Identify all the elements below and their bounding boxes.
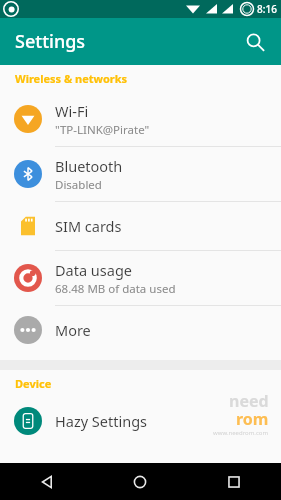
button[interactable]: Recents bbox=[187, 463, 281, 500]
staticText: www.needrom.com bbox=[213, 429, 269, 437]
staticText: 8:16 bbox=[257, 2, 277, 16]
button[interactable]: Search bbox=[237, 24, 273, 60]
staticText: rom bbox=[236, 408, 269, 430]
button[interactable]: Data usage bbox=[0, 251, 281, 305]
button[interactable]: More bbox=[0, 306, 281, 354]
staticText: Settings bbox=[15, 29, 86, 54]
button[interactable]: SIM cards bbox=[0, 202, 281, 250]
staticText: Wi-Fi bbox=[55, 101, 89, 121]
staticText: Data usage bbox=[55, 260, 132, 280]
button[interactable]: Hazy Settings bbox=[0, 397, 281, 445]
staticText: Device bbox=[15, 376, 52, 391]
staticText: Hazy Settings bbox=[55, 411, 148, 431]
staticText: Bluetooth bbox=[55, 156, 123, 176]
staticText: More bbox=[55, 320, 91, 340]
staticText: "TP-LINK@Pirate" bbox=[55, 122, 150, 138]
button[interactable]: Bluetooth bbox=[0, 147, 281, 201]
staticText: Wireless & networks bbox=[15, 71, 128, 86]
button[interactable]: Home bbox=[93, 463, 187, 500]
staticText: 68.48 MB of data used bbox=[55, 281, 176, 297]
button[interactable]: Back bbox=[0, 463, 93, 500]
button[interactable]: Wi-Fi bbox=[0, 92, 281, 146]
staticText: SIM cards bbox=[55, 216, 122, 236]
staticText: Disabled bbox=[55, 177, 102, 193]
staticText: need bbox=[229, 390, 269, 412]
